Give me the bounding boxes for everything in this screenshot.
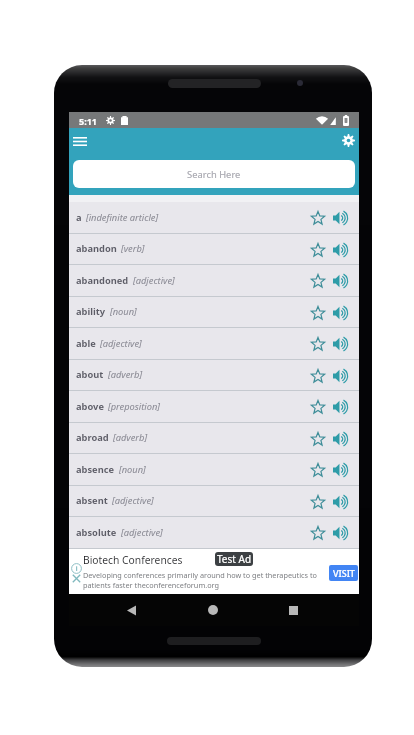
button[interactable]: a: [69, 202, 359, 234]
button[interactable]: Add to favourites: [307, 423, 329, 454]
staticText: Test Ad: [217, 552, 252, 566]
button[interactable]: Add to favourites: [307, 265, 329, 297]
button[interactable]: Pronounce: [329, 391, 353, 423]
button[interactable]: Recent apps: [277, 594, 309, 626]
button[interactable]: Add to favourites: [307, 486, 329, 517]
staticText: [noun]: [119, 463, 146, 476]
button[interactable]: Pronounce: [329, 234, 353, 265]
button[interactable]: Menu: [69, 130, 91, 152]
button[interactable]: Home: [197, 594, 229, 626]
button[interactable]: Pronounce: [329, 297, 353, 328]
staticText: [adjective]: [133, 274, 175, 287]
button[interactable]: ability: [69, 297, 359, 328]
button[interactable]: Add to favourites: [307, 328, 329, 360]
button[interactable]: Add to favourites: [307, 517, 329, 549]
button[interactable]: Pronounce: [329, 454, 353, 486]
button[interactable]: abandoned: [69, 265, 359, 297]
button[interactable]: abandon: [69, 234, 359, 265]
staticText: abroad: [76, 431, 109, 444]
staticText: [adverb]: [113, 431, 148, 444]
staticText: [verb]: [121, 242, 145, 255]
staticText: Biotech Conferences: [83, 553, 183, 567]
button[interactable]: Add to favourites: [307, 234, 329, 265]
staticText: absolute: [76, 526, 117, 539]
button[interactable]: Pronounce: [329, 202, 353, 234]
button[interactable]: Add to favourites: [307, 297, 329, 328]
button[interactable]: Pronounce: [329, 423, 353, 454]
staticText: [preposition]: [108, 400, 161, 413]
button[interactable]: Pronounce: [329, 486, 353, 517]
staticText: ability: [76, 305, 106, 318]
staticText: [adjective]: [100, 337, 142, 350]
button[interactable]: absent: [69, 486, 359, 517]
button[interactable]: absolute: [69, 517, 359, 549]
staticText: patients faster theconferenceforum.org: [83, 580, 219, 590]
staticText: [indefinite article]: [86, 211, 159, 224]
staticText: able: [76, 337, 96, 350]
staticText: a: [76, 211, 82, 224]
button[interactable]: Pronounce: [329, 517, 353, 549]
staticText: absence: [76, 463, 115, 476]
staticText: above: [76, 400, 104, 413]
button[interactable]: Search Here: [73, 160, 355, 188]
staticText: 5:11: [79, 115, 97, 127]
staticText: Developing conferences primarily around …: [83, 570, 317, 580]
button[interactable]: Back: [115, 594, 147, 626]
button[interactable]: above: [69, 391, 359, 423]
staticText: abandon: [76, 242, 117, 255]
button[interactable]: Settings: [337, 129, 359, 151]
button[interactable]: Pronounce: [329, 328, 353, 360]
button[interactable]: abroad: [69, 423, 359, 454]
button[interactable]: Pronounce: [329, 360, 353, 391]
staticText: VISIT: [333, 567, 355, 579]
staticText: [adverb]: [108, 368, 143, 381]
staticText: abandoned: [76, 274, 129, 287]
staticText: [adjective]: [121, 526, 163, 539]
staticText: [adjective]: [112, 494, 154, 507]
staticText: [noun]: [110, 305, 137, 318]
button[interactable]: about: [69, 360, 359, 391]
staticText: Search Here: [187, 168, 241, 181]
button[interactable]: able: [69, 328, 359, 360]
button[interactable]: absence: [69, 454, 359, 486]
button[interactable]: Add to favourites: [307, 360, 329, 391]
button[interactable]: VISIT: [329, 565, 358, 581]
button[interactable]: Add to favourites: [307, 454, 329, 486]
staticText: absent: [76, 494, 108, 507]
button[interactable]: Pronounce: [329, 265, 353, 297]
button[interactable]: Add to favourites: [307, 202, 329, 234]
staticText: about: [76, 368, 104, 381]
button[interactable]: Add to favourites: [307, 391, 329, 423]
